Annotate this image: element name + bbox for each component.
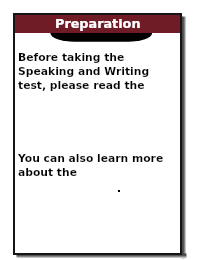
staticText: You can also learn more about the bbox=[18, 152, 168, 179]
staticText: Before taking the Speaking and Writing t… bbox=[18, 51, 164, 92]
other: Banner shadow bbox=[15, 33, 180, 43]
button[interactable]: Preparation bbox=[15, 15, 180, 33]
staticText: Preparation bbox=[55, 16, 141, 31]
